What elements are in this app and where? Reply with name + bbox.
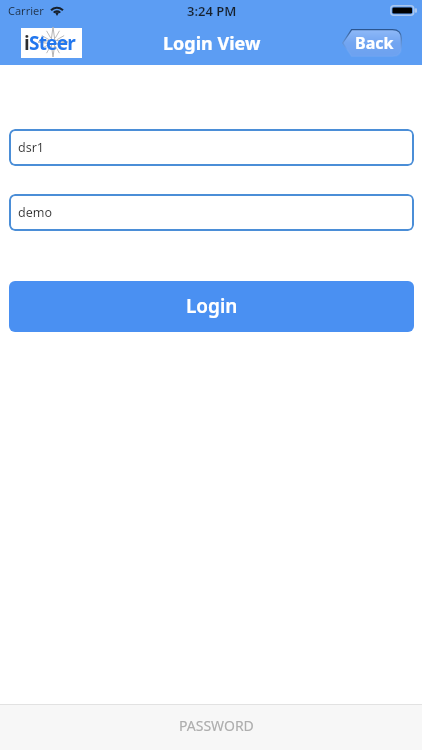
staticText: demo — [18, 204, 52, 221]
staticText: PASSWORD — [179, 716, 254, 735]
staticText: Steer — [29, 30, 75, 56]
staticText: Login View — [163, 31, 261, 56]
button[interactable]: dsr1 — [9, 129, 414, 166]
button[interactable]: Login — [9, 281, 414, 332]
staticText: dsr1 — [18, 139, 44, 156]
button[interactable]: Back — [342, 29, 402, 57]
button[interactable]: demo — [9, 194, 414, 231]
staticText: i — [24, 30, 29, 56]
staticText: Login — [186, 293, 238, 319]
staticText: Carrier — [8, 3, 44, 18]
staticText: 3:24 PM — [187, 2, 237, 20]
staticText: Back — [355, 32, 394, 54]
